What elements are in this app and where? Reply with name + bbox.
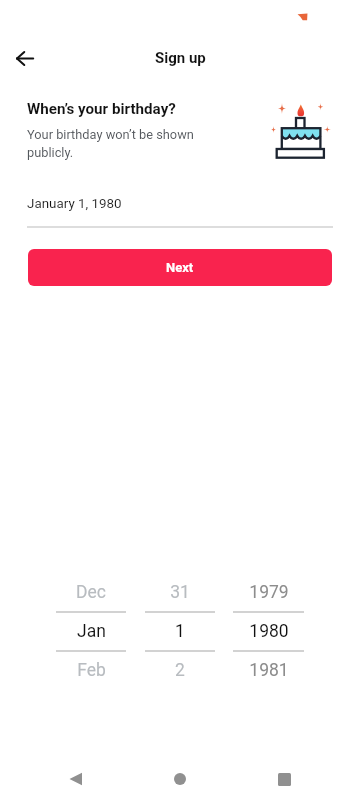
staticText: Next <box>166 260 194 275</box>
staticText: When’s your birthday? <box>27 100 176 118</box>
button[interactable]: Dec <box>56 573 126 612</box>
button[interactable]: 1 <box>145 612 215 651</box>
button[interactable]: Next <box>28 249 332 286</box>
staticText: 1981 <box>249 660 289 681</box>
button[interactable]: 1981 <box>233 651 304 690</box>
staticText: Feb <box>77 660 106 681</box>
button[interactable]: 31 <box>145 573 215 612</box>
button[interactable]: Back <box>7 40 43 76</box>
button[interactable]: January 1, 1980 <box>27 196 333 228</box>
staticText: 31 <box>170 582 190 603</box>
staticText: 1 <box>175 621 185 642</box>
staticText: Your birthday won’t be shown publicly. <box>27 127 194 160</box>
staticText: 2 <box>175 660 185 681</box>
button[interactable]: 1980 <box>233 612 304 651</box>
staticText: 1979 <box>249 582 289 603</box>
button[interactable]: Jan <box>56 612 126 651</box>
button[interactable]: Back <box>51 755 99 800</box>
staticText: Jan <box>77 621 106 642</box>
staticText: Sign up <box>155 49 206 67</box>
button[interactable]: 2 <box>145 651 215 690</box>
button[interactable]: Feb <box>56 651 126 690</box>
staticText: 1980 <box>249 621 289 642</box>
staticText: January 1, 1980 <box>27 196 122 212</box>
button[interactable]: Home <box>156 755 204 800</box>
staticText: Dec <box>76 582 106 603</box>
button[interactable]: Recent apps <box>260 755 308 800</box>
button[interactable]: 1979 <box>233 573 304 612</box>
